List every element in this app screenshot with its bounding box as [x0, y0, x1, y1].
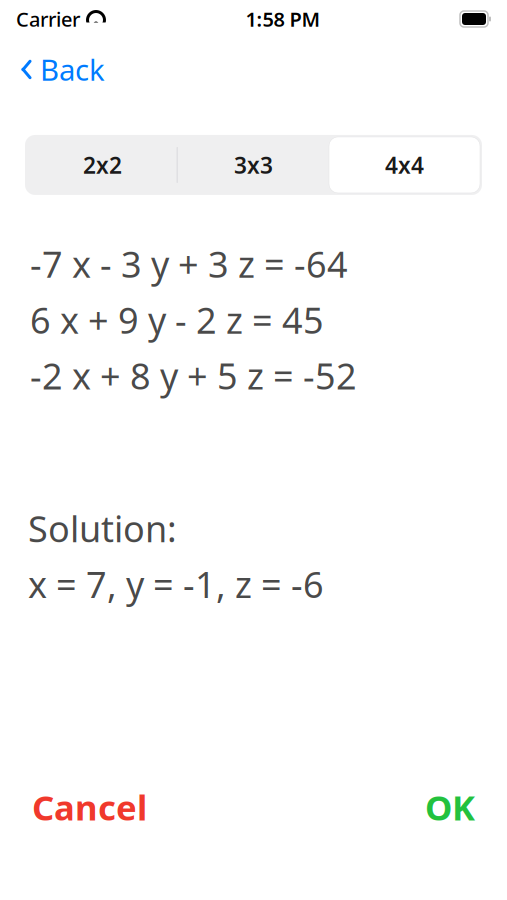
button[interactable]: 3x3 — [178, 137, 329, 193]
staticText: -7 x - 3 y + 3 z = -64 — [30, 240, 348, 288]
staticText: 6 x + 9 y - 2 z = 45 — [30, 296, 324, 344]
staticText: 2x2 — [83, 150, 122, 180]
staticText: OK — [425, 784, 475, 830]
staticText: -2 x + 8 y + 5 z = -52 — [30, 352, 357, 399]
button[interactable]: Cancel — [28, 776, 151, 838]
staticText: 1:58 PM — [245, 6, 320, 32]
staticText: 4x4 — [385, 150, 424, 180]
staticText: Cancel — [32, 784, 147, 830]
staticText: x = 7, y = -1, z = -6 — [28, 560, 324, 608]
button[interactable]: OK — [421, 776, 479, 838]
staticText: Back — [40, 50, 105, 89]
button[interactable]: 2x2 — [27, 137, 178, 193]
staticText: Solution: — [28, 504, 177, 552]
button[interactable]: Back — [6, 44, 119, 95]
staticText: Carrier — [16, 6, 80, 32]
staticText: 3x3 — [234, 150, 273, 180]
button[interactable]: 4x4 — [329, 137, 480, 193]
